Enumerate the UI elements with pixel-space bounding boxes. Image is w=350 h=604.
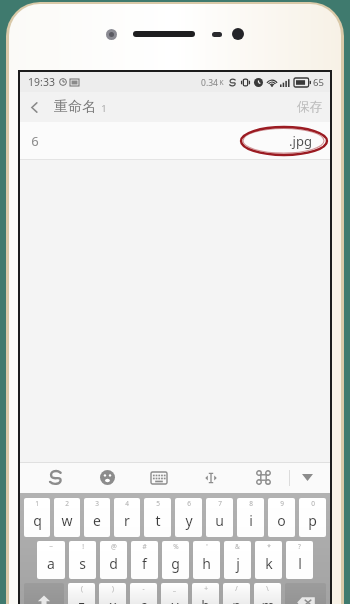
staticText: m (261, 596, 275, 604)
staticText: y (185, 511, 193, 530)
staticText: 0.34 (201, 77, 218, 89)
staticText: p (308, 511, 317, 530)
button[interactable]: Move cursor (185, 462, 237, 493)
staticText: 4 (125, 499, 129, 508)
staticText: 3 (95, 499, 99, 508)
button[interactable]: ) (99, 583, 126, 604)
staticText: ' (206, 542, 208, 551)
button[interactable]: ~ (37, 541, 65, 579)
button[interactable]: ! (69, 541, 96, 579)
button[interactable]: Back (20, 97, 47, 118)
button[interactable]: 7 (206, 498, 233, 537)
button[interactable]: 9 (268, 498, 295, 537)
staticText: c (140, 596, 147, 604)
button[interactable]: _ (161, 583, 188, 604)
staticText: .jpg (289, 132, 312, 150)
staticText: v (171, 596, 179, 604)
staticText: w (61, 511, 73, 530)
button[interactable]: \ (254, 583, 281, 604)
button[interactable]: * (255, 541, 282, 579)
button[interactable]: 5 (144, 498, 171, 537)
staticText: l (298, 554, 302, 573)
staticText: 1 (101, 102, 107, 115)
staticText: r (124, 511, 130, 530)
button[interactable]: 6 (20, 122, 330, 160)
staticText: e (93, 511, 101, 530)
staticText: a (47, 554, 55, 573)
staticText: _ (173, 584, 176, 593)
button[interactable]: ' (193, 541, 220, 579)
staticText: f (142, 554, 147, 573)
staticText: b (201, 596, 210, 604)
staticText: x (109, 596, 117, 604)
staticText: \ (266, 584, 269, 593)
staticText: 9 (280, 499, 284, 508)
staticText: # (142, 542, 147, 551)
button[interactable]: Emoji (81, 462, 133, 493)
staticText: 7 (218, 499, 222, 508)
button[interactable]: 2 (54, 498, 80, 537)
staticText: K (219, 78, 224, 87)
button[interactable]: 6 (175, 498, 202, 537)
staticText: j (236, 554, 240, 573)
button[interactable]: 8 (237, 498, 264, 537)
staticText: k (265, 554, 273, 573)
button[interactable]: 4 (114, 498, 140, 537)
staticText: % (173, 542, 179, 551)
staticText: d (109, 554, 118, 573)
staticText: 6 (187, 499, 191, 508)
staticText: 65 (313, 76, 324, 89)
staticText: g (171, 554, 180, 573)
staticText: 2 (65, 499, 69, 508)
button[interactable]: Settings (237, 462, 289, 493)
staticText: @ (111, 542, 117, 551)
staticText: u (215, 511, 224, 530)
button[interactable]: Keyboard layout (133, 462, 185, 493)
staticText: s (79, 554, 86, 573)
button[interactable]: # (131, 541, 158, 579)
staticText: 19:33 (28, 75, 55, 89)
button[interactable]: 1 (24, 498, 50, 537)
button[interactable]: / (223, 583, 250, 604)
button[interactable]: ( (68, 583, 95, 604)
button[interactable]: 保存 (289, 94, 330, 120)
button[interactable]: Sogou input (30, 462, 81, 493)
staticText: / (235, 584, 238, 593)
staticText: 8 (249, 499, 253, 508)
staticText: h (202, 554, 211, 573)
staticText: o (277, 511, 286, 530)
button[interactable]: @ (100, 541, 127, 579)
staticText: t (155, 511, 161, 530)
staticText: 保存 (297, 99, 322, 115)
staticText: 0 (311, 499, 315, 508)
button[interactable]: Shift (24, 583, 64, 604)
button[interactable]: Hide keyboard (290, 462, 324, 493)
staticText: 5 (156, 499, 160, 508)
staticText: 重命名 (54, 98, 96, 116)
button[interactable]: & (224, 541, 251, 579)
staticText: ? (298, 542, 301, 551)
staticText: * (267, 542, 271, 551)
staticText: ) (112, 584, 114, 593)
staticText: + (204, 584, 208, 593)
staticText: 6 (31, 132, 39, 150)
staticText: ~ (49, 542, 53, 551)
button[interactable]: + (192, 583, 219, 604)
button[interactable]: ? (286, 541, 313, 579)
staticText: & (235, 542, 240, 551)
button[interactable]: 0 (299, 498, 326, 537)
button[interactable]: 3 (84, 498, 110, 537)
staticText: - (142, 584, 145, 593)
staticText: z (78, 596, 85, 604)
staticText: q (33, 511, 42, 530)
staticText: i (249, 511, 253, 530)
button[interactable]: - (130, 583, 157, 604)
button[interactable]: Backspace (285, 583, 326, 604)
staticText: ( (81, 584, 83, 593)
button[interactable]: % (162, 541, 189, 579)
staticText: n (232, 596, 241, 604)
staticText: ! (82, 542, 84, 551)
staticText: 1 (35, 499, 39, 508)
